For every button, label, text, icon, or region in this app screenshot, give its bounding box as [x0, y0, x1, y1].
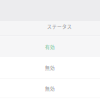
- button[interactable]: 有効: [0, 36, 100, 57]
- staticText: 有効: [45, 43, 55, 50]
- staticText: ステータス: [47, 23, 72, 30]
- button[interactable]: 無効: [0, 57, 100, 78]
- button[interactable]: 無効: [0, 79, 100, 97]
- staticText: 無効: [45, 85, 55, 92]
- staticText: 無効: [45, 64, 55, 71]
